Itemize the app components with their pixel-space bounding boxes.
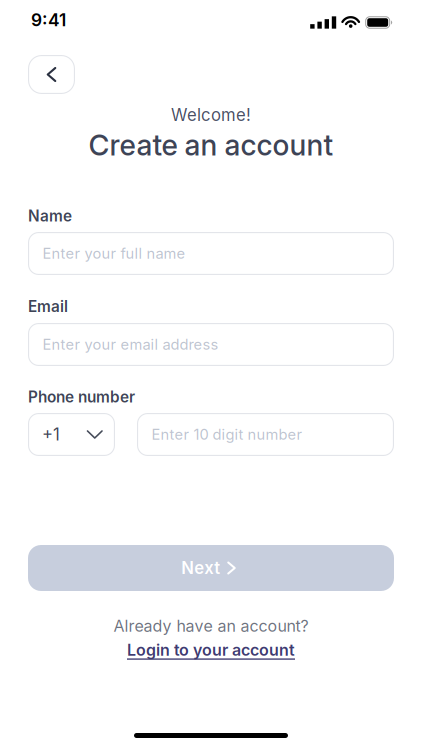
staticText: Enter your email address bbox=[42, 336, 218, 353]
staticText: Phone number bbox=[28, 388, 135, 406]
staticText: Welcome! bbox=[171, 105, 251, 125]
staticText: Login to your account bbox=[127, 640, 295, 660]
staticText: Already have an account? bbox=[113, 616, 308, 636]
staticText: Enter your full name bbox=[42, 245, 185, 262]
staticText: Create an account bbox=[88, 128, 333, 162]
staticText: Email bbox=[28, 297, 68, 316]
staticText: Name bbox=[28, 207, 72, 225]
staticText: +1 bbox=[42, 424, 60, 445]
staticText: Enter 10 digit number bbox=[151, 426, 302, 443]
staticText: 9:41 bbox=[31, 9, 66, 30]
staticText: Next bbox=[181, 558, 220, 578]
